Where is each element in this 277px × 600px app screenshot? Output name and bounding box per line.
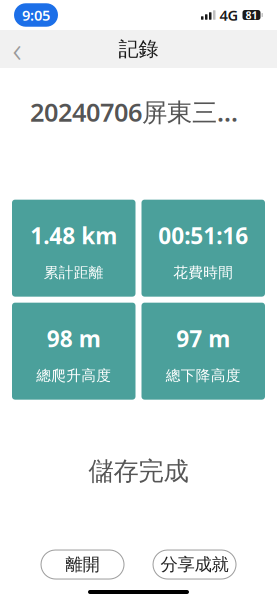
staticText: 4G bbox=[219, 5, 238, 25]
button[interactable]: 分享成就 bbox=[153, 550, 236, 579]
staticText: 分享成就 bbox=[160, 554, 228, 575]
staticText: 儲存完成 bbox=[88, 456, 188, 487]
staticText: 97 m bbox=[176, 323, 230, 354]
button[interactable]: 離開 bbox=[41, 550, 124, 579]
button[interactable]: Back bbox=[0, 30, 34, 68]
staticText: ‹ bbox=[12, 26, 21, 72]
staticText: 總下降高度 bbox=[166, 367, 241, 385]
staticText: 累計距離 bbox=[44, 264, 104, 282]
staticText: 98 m bbox=[47, 323, 101, 354]
staticText: 00:51:16 bbox=[158, 220, 248, 251]
staticText: 花費時間 bbox=[173, 264, 233, 282]
staticText: 離開 bbox=[65, 554, 99, 575]
staticText: 81 bbox=[245, 8, 257, 22]
staticText: 20240706屏東三… bbox=[30, 95, 238, 129]
staticText: 9:05 bbox=[22, 5, 50, 25]
staticText: 記錄 bbox=[118, 37, 158, 61]
staticText: 總爬升高度 bbox=[36, 367, 111, 385]
staticText: 1.48 km bbox=[30, 220, 117, 251]
